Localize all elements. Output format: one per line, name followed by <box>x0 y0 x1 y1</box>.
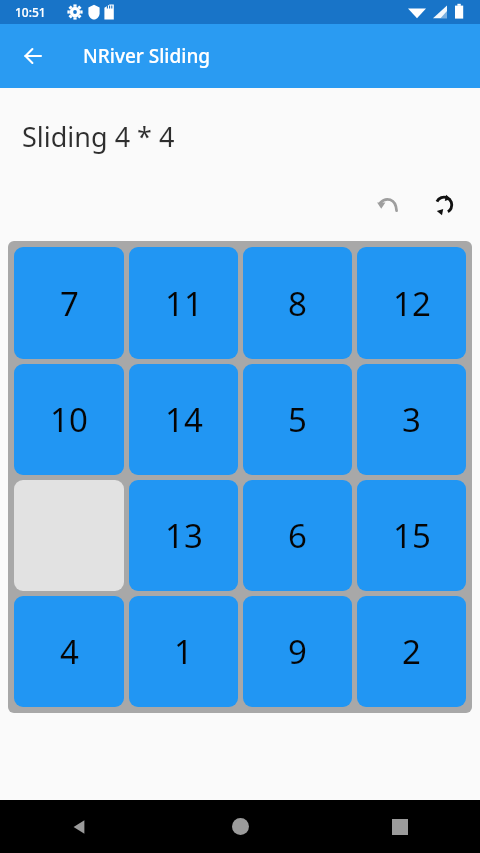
staticText: 14 <box>165 397 203 442</box>
staticText: 3 <box>402 397 421 442</box>
button[interactable]: 15 <box>357 480 466 591</box>
button[interactable]: 8 <box>243 247 352 359</box>
staticText: 7 <box>60 281 79 326</box>
button[interactable]: Reset <box>422 183 466 227</box>
staticText: Sliding 4 * 4 <box>22 118 175 155</box>
staticText: 6 <box>288 513 307 558</box>
staticText: 9 <box>288 629 307 674</box>
button[interactable]: 5 <box>243 364 352 475</box>
button[interactable]: 7 <box>14 247 124 359</box>
button[interactable]: 12 <box>357 247 466 359</box>
button[interactable]: Home <box>160 800 320 853</box>
staticText: 15 <box>393 513 431 558</box>
button[interactable]: Undo <box>366 183 410 227</box>
staticText: 2 <box>402 629 421 674</box>
button[interactable]: Empty space <box>14 480 124 591</box>
staticText: 4 <box>60 629 79 674</box>
button[interactable]: 2 <box>357 596 466 707</box>
button[interactable]: 11 <box>129 247 238 359</box>
staticText: 11 <box>165 281 203 326</box>
staticText: NRiver Sliding <box>83 43 211 69</box>
staticText: 10:51 <box>15 4 46 20</box>
staticText: 1 <box>174 629 193 674</box>
button[interactable]: 13 <box>129 480 238 591</box>
staticText: 12 <box>393 281 431 326</box>
button[interactable]: 10 <box>14 364 124 475</box>
staticText: 5 <box>288 397 307 442</box>
button[interactable]: 3 <box>357 364 466 475</box>
staticText: 10 <box>50 397 88 442</box>
button[interactable]: 14 <box>129 364 238 475</box>
button[interactable]: 9 <box>243 596 352 707</box>
button[interactable]: Recent apps <box>320 800 480 853</box>
button[interactable]: 6 <box>243 480 352 591</box>
staticText: 8 <box>288 281 307 326</box>
button[interactable]: 1 <box>129 596 238 707</box>
staticText: 13 <box>165 513 203 558</box>
button[interactable]: Back <box>0 800 160 853</box>
button[interactable]: 4 <box>14 596 124 707</box>
button[interactable]: Back <box>9 32 57 80</box>
